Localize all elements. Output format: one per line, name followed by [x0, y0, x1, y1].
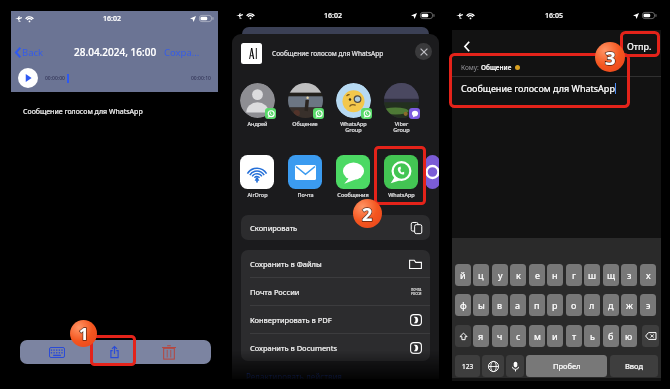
staticText: я [478, 330, 484, 342]
button[interactable]: Пробел [526, 355, 607, 377]
button[interactable]: з [621, 264, 637, 286]
button[interactable]: Viber Group [377, 83, 425, 134]
button[interactable]: о [566, 294, 582, 316]
staticText: Coxpa... [164, 46, 200, 59]
staticText: т [572, 330, 577, 342]
button[interactable]: ч [492, 325, 508, 347]
button[interactable]: Back [458, 37, 476, 55]
staticText: Почта [297, 191, 314, 198]
staticText: о [571, 299, 577, 311]
button[interactable]: щ [603, 264, 619, 286]
button[interactable]: ш [584, 264, 600, 286]
button[interactable]: д [603, 294, 619, 316]
button[interactable]: Скопировать [241, 215, 430, 240]
staticText: ь [590, 330, 595, 342]
button[interactable] [482, 355, 504, 377]
staticText: п [534, 299, 540, 311]
button[interactable]: Delete [148, 340, 189, 364]
staticText: Пробел [553, 361, 581, 371]
staticText: Сохранить в Documents [250, 343, 338, 353]
button[interactable] [506, 355, 524, 377]
button[interactable]: р [547, 294, 563, 316]
staticText: Сообщение голосом для WhatsApp [461, 82, 615, 94]
button[interactable]: Почта России [241, 278, 430, 305]
staticText: 3 [605, 45, 616, 70]
staticText: н [552, 269, 558, 281]
button[interactable]: Сообщения [329, 155, 377, 198]
button[interactable]: и [547, 325, 563, 347]
staticText: ш [588, 269, 597, 281]
staticText: в [497, 299, 503, 311]
button[interactable] [642, 325, 659, 347]
button[interactable]: Share [94, 340, 135, 364]
staticText: РОССИИ [411, 292, 422, 296]
button[interactable]: WhatsApp [377, 155, 425, 198]
button[interactable]: я [473, 325, 489, 347]
button[interactable]: с [510, 325, 526, 347]
button[interactable]: ж [621, 294, 637, 316]
button[interactable]: Сохранить в Documents [241, 334, 430, 361]
button[interactable]: ф [455, 294, 471, 316]
staticText: 16:02 [324, 11, 342, 21]
staticText: 00:00:00 [45, 75, 65, 82]
staticText: ф [460, 299, 467, 311]
button[interactable]: 123 [455, 355, 480, 377]
staticText: 1 [79, 322, 89, 345]
staticText: е [535, 269, 540, 281]
button[interactable] [425, 155, 439, 198]
button[interactable]: Play [18, 68, 38, 88]
button[interactable]: й [455, 264, 471, 286]
button[interactable]: ы [473, 294, 489, 316]
button[interactable]: в [492, 294, 508, 316]
button[interactable]: WhatsApp Group [329, 83, 377, 134]
staticText: а [515, 299, 521, 311]
button[interactable]: у [492, 264, 508, 286]
staticText: з [627, 269, 632, 281]
button[interactable]: п [529, 294, 545, 316]
button[interactable]: э [640, 294, 656, 316]
button[interactable]: е [529, 264, 545, 286]
staticText: WhatsApp [388, 191, 415, 198]
button[interactable]: Почта [281, 155, 329, 198]
staticText: б [608, 330, 614, 342]
button[interactable]: Общение [281, 83, 329, 127]
staticText: Конвертировать в PDF [250, 315, 332, 325]
button[interactable]: Back [15, 44, 44, 60]
staticText: й [460, 269, 466, 281]
button[interactable]: Coxpa... [161, 44, 200, 60]
button[interactable]: г [566, 264, 582, 286]
button[interactable]: Сохранить в Файлы [241, 250, 430, 277]
staticText: WhatsApp Group [340, 120, 367, 134]
button[interactable]: л [584, 294, 600, 316]
button[interactable]: Андрей [233, 83, 281, 127]
staticText: Общение [292, 120, 318, 127]
button[interactable]: Ввод [610, 355, 658, 377]
button[interactable]: х [640, 264, 656, 286]
staticText: х [646, 269, 651, 281]
staticText: э [646, 299, 651, 311]
staticText: 1 [79, 322, 89, 345]
button[interactable]: б [603, 325, 619, 347]
button[interactable]: к [510, 264, 526, 286]
button[interactable]: AirDrop [233, 155, 281, 198]
button[interactable]: Отпр. [627, 40, 652, 52]
button[interactable] [455, 325, 471, 347]
staticText: Андрей [247, 120, 268, 127]
button[interactable]: ц [473, 264, 489, 286]
staticText: Общение [481, 63, 512, 72]
button[interactable]: Keyboard [36, 340, 77, 364]
button[interactable]: м [529, 325, 545, 347]
button[interactable]: Конвертировать в PDF [241, 306, 430, 333]
button[interactable]: Редактировать действия [246, 371, 342, 379]
button[interactable]: н [547, 264, 563, 286]
button[interactable]: Close [415, 43, 432, 60]
button[interactable]: т [566, 325, 582, 347]
button[interactable]: а [510, 294, 526, 316]
staticText: к [516, 269, 521, 281]
button[interactable]: ь [584, 325, 600, 347]
staticText: Сообщение голосом для WhatsApp [23, 107, 143, 117]
staticText: Back [22, 46, 44, 59]
staticText: 16:02 [103, 14, 121, 24]
staticText: ч [497, 330, 503, 342]
button[interactable]: ю [621, 325, 637, 347]
